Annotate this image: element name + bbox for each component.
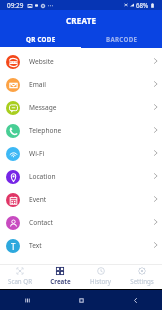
staticText: CREATE xyxy=(66,15,97,26)
button[interactable]: Wi-Fi xyxy=(0,142,162,165)
button[interactable]: History xyxy=(80,265,121,289)
staticText: Wi-Fi xyxy=(29,149,45,158)
button[interactable]: Recent apps xyxy=(0,290,54,310)
staticText: BARCODE xyxy=(106,35,138,43)
button[interactable]: T xyxy=(0,234,162,257)
staticText: Message xyxy=(29,103,57,112)
staticText: History xyxy=(90,277,111,285)
staticText: Email xyxy=(29,80,46,89)
staticText: Settings xyxy=(130,277,154,285)
button[interactable]: Scan QR xyxy=(0,265,40,289)
button[interactable]: Settings xyxy=(121,265,162,289)
button[interactable]: Location xyxy=(0,165,162,188)
staticText: Scan QR xyxy=(8,277,32,285)
button[interactable]: Email xyxy=(0,73,162,96)
button[interactable]: Create xyxy=(40,265,80,289)
staticText: Website xyxy=(29,57,54,66)
staticText: Create xyxy=(50,277,71,285)
staticText: Telephone xyxy=(29,126,62,135)
button[interactable]: Message xyxy=(0,96,162,119)
button[interactable]: Website xyxy=(0,50,162,73)
staticText: QR CODE xyxy=(26,35,56,43)
button[interactable]: Telephone xyxy=(0,119,162,142)
staticText: 68% xyxy=(136,1,149,9)
button[interactable]: Event xyxy=(0,188,162,211)
button[interactable]: BARCODE xyxy=(81,31,162,47)
staticText: Event xyxy=(29,195,47,204)
button[interactable]: Back xyxy=(108,290,162,310)
button[interactable]: Contact xyxy=(0,211,162,234)
button[interactable]: QR CODE xyxy=(0,31,81,47)
staticText: Contact xyxy=(29,218,53,227)
staticText: 09:29 xyxy=(7,1,24,10)
staticText: Text xyxy=(29,241,42,250)
staticText: Location xyxy=(29,172,56,181)
button[interactable]: Home xyxy=(54,290,108,310)
staticText: T xyxy=(11,241,16,252)
